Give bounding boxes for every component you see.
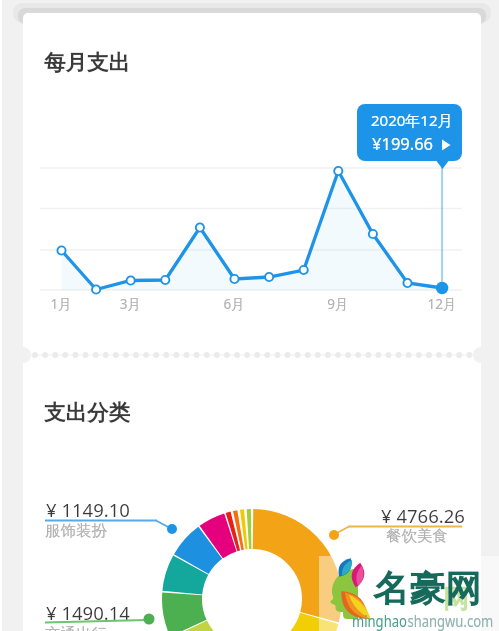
- button[interactable]: 每月支出折线图: [23, 13, 481, 343]
- button[interactable]: 支出分类饼图: [23, 366, 481, 631]
- button[interactable]: 2020年12月 ¥199.66 查看详情: [357, 104, 462, 169]
